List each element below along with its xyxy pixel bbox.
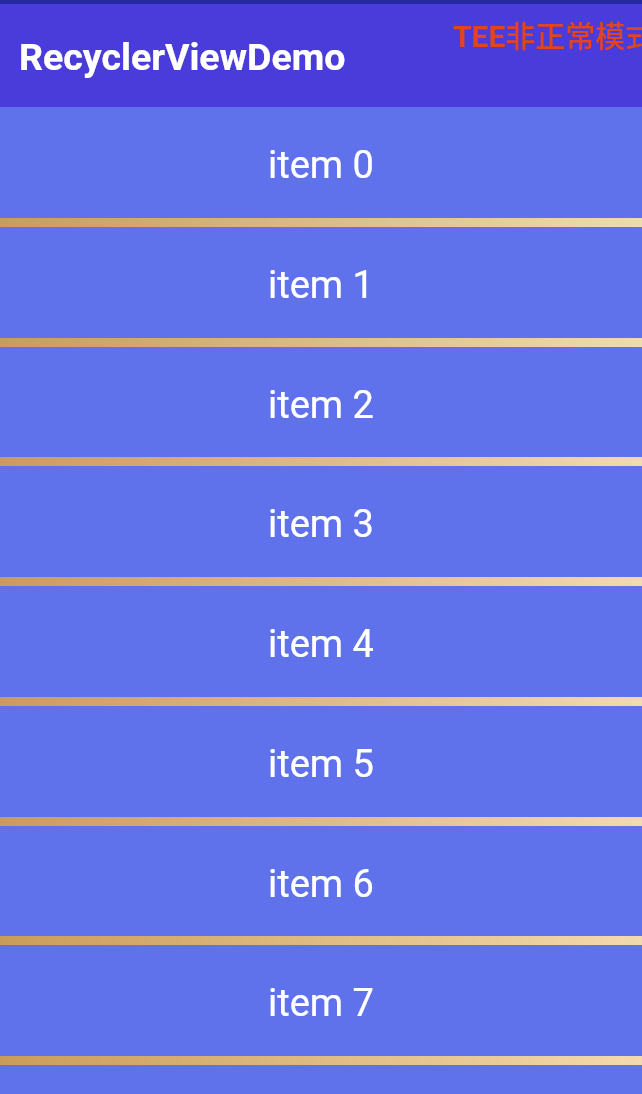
- staticText: item 6: [268, 862, 374, 907]
- staticText: RecyclerViewDemo: [19, 35, 346, 79]
- button[interactable]: item 7: [0, 945, 642, 1056]
- staticText: item 0: [268, 143, 374, 188]
- staticText: item 3: [268, 502, 374, 547]
- button[interactable]: item 6: [0, 826, 642, 936]
- button[interactable]: item 0: [0, 107, 642, 218]
- staticText: item 7: [268, 981, 374, 1026]
- staticText: item 1: [268, 263, 374, 308]
- staticText: item 2: [268, 383, 374, 428]
- button[interactable]: item 3: [0, 466, 642, 577]
- staticText: item 5: [268, 742, 374, 787]
- staticText: TEE非正常模式: [453, 12, 642, 55]
- button[interactable]: item 5: [0, 706, 642, 817]
- button[interactable]: item 2: [0, 347, 642, 457]
- button[interactable]: item 4: [0, 586, 642, 697]
- button[interactable]: item 1: [0, 227, 642, 338]
- staticText: item 4: [268, 622, 374, 667]
